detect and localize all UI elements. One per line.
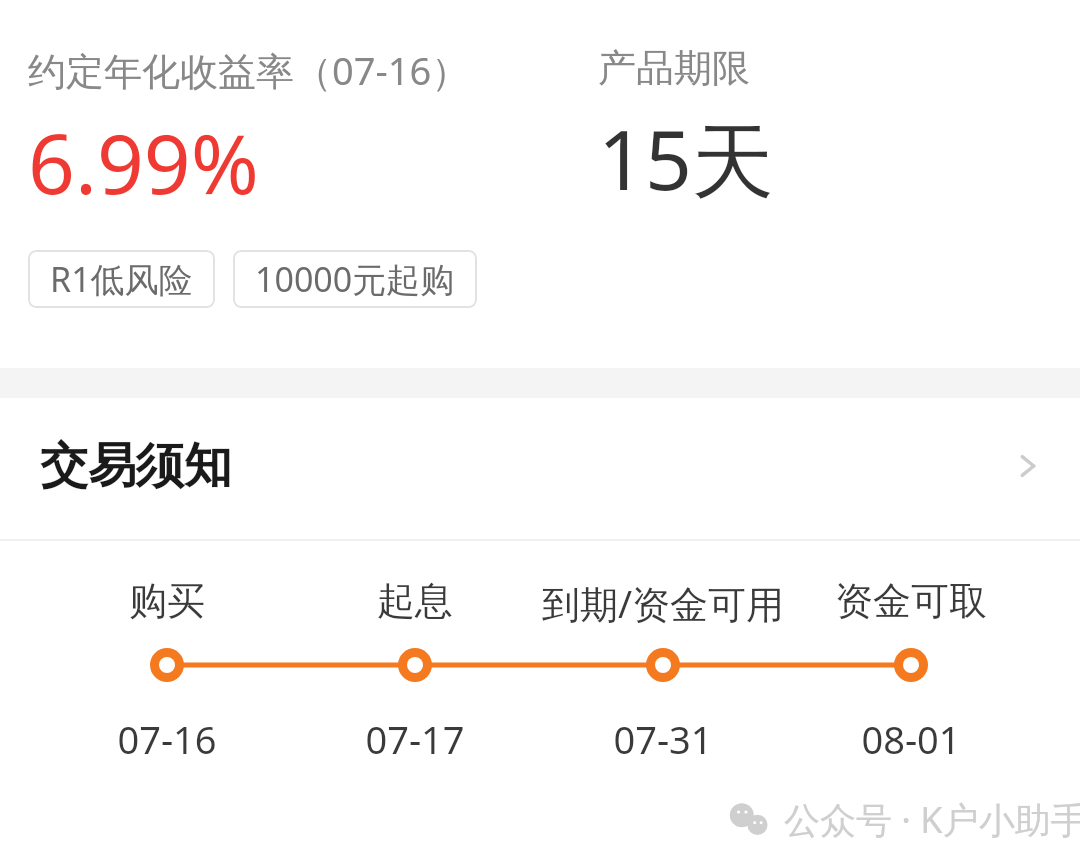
staticText: 07-17 bbox=[245, 713, 585, 765]
staticText: 07-31 bbox=[493, 713, 833, 765]
staticText: 到期/资金可用 bbox=[493, 577, 833, 629]
staticText: 15天 bbox=[598, 102, 774, 214]
staticText: 交易须知 bbox=[40, 436, 232, 496]
staticText: 10000元起购 bbox=[255, 256, 455, 302]
staticText: 购买 bbox=[0, 577, 337, 625]
staticText: 约定年化收益率（07-16） bbox=[28, 44, 470, 96]
staticText: R1低风险 bbox=[50, 256, 193, 302]
other: 交易须知 详情 bbox=[1010, 448, 1046, 484]
staticText: 07-16 bbox=[0, 713, 337, 765]
staticText: 6.99% bbox=[28, 106, 259, 218]
staticText: 公众号 · K户小助手 bbox=[784, 795, 1080, 844]
staticText: 资金可取 bbox=[741, 577, 1080, 625]
staticText: 产品期限 bbox=[598, 44, 750, 92]
staticText: 08-01 bbox=[741, 713, 1080, 765]
staticText: 起息 bbox=[245, 577, 585, 625]
button[interactable]: 10000元起购 bbox=[233, 250, 477, 308]
button[interactable]: 交易须知 bbox=[0, 398, 1080, 539]
button[interactable]: R1低风险 bbox=[28, 250, 215, 308]
